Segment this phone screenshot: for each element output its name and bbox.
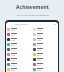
button[interactable]	[6, 32, 32, 37]
button[interactable]	[32, 32, 58, 37]
button[interactable]	[32, 27, 58, 32]
button[interactable]	[6, 42, 32, 47]
staticText: Any of Your Mobile Applications	[16, 14, 49, 17]
button[interactable]	[6, 37, 32, 42]
button[interactable]	[6, 67, 32, 72]
button[interactable]	[32, 57, 58, 62]
button[interactable]	[32, 47, 58, 52]
button[interactable]	[32, 67, 58, 72]
button[interactable]	[6, 52, 32, 57]
button[interactable]	[6, 57, 32, 62]
button[interactable]	[6, 27, 32, 32]
button[interactable]	[6, 62, 32, 67]
button[interactable]	[32, 62, 58, 67]
button[interactable]	[32, 37, 58, 42]
button[interactable]	[32, 42, 58, 47]
button[interactable]	[32, 52, 58, 57]
button[interactable]	[6, 47, 32, 52]
staticText: Achievement	[16, 4, 49, 11]
